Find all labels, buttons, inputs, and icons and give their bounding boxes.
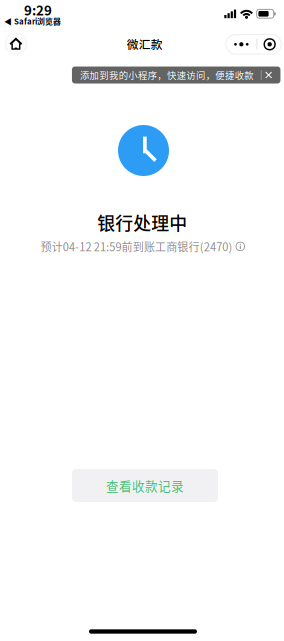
button[interactable]: Close mini program bbox=[258, 35, 282, 54]
button[interactable]: Home bbox=[3, 31, 29, 57]
button[interactable]: More options bbox=[226, 35, 257, 54]
button[interactable]: 查看收款记录 bbox=[72, 469, 218, 502]
staticText: 9:29 bbox=[24, 0, 52, 19]
staticText: 查看收款记录 bbox=[106, 476, 184, 495]
staticText: 添加到我的小程序，快速访问，便捷收款 bbox=[80, 68, 253, 82]
staticText: 微汇款 bbox=[127, 35, 163, 52]
staticText: 预计04-12 21:59前到账工商银行(2470) bbox=[40, 238, 232, 254]
staticText: ◀ Safari浏览器 bbox=[4, 15, 61, 27]
button[interactable]: Dismiss tip bbox=[259, 66, 279, 83]
staticText: 银行处理中 bbox=[97, 210, 187, 235]
